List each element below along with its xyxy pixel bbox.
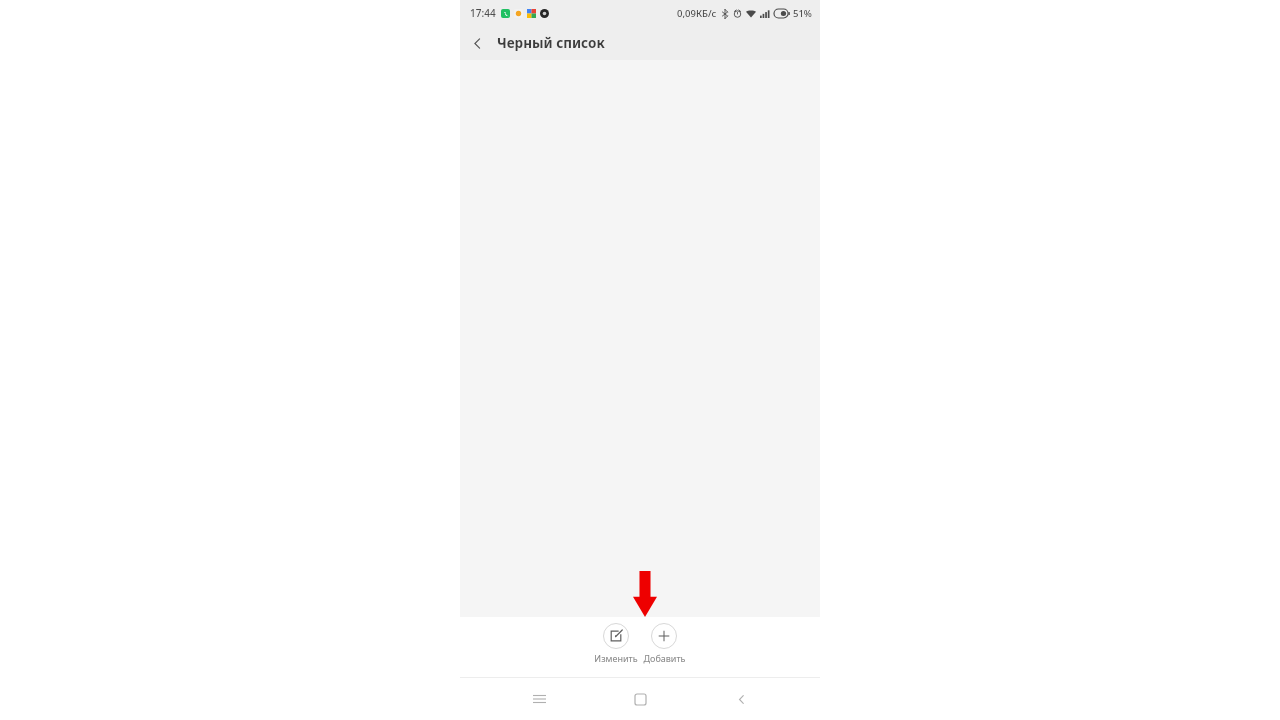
staticText: Изменить [594, 652, 638, 664]
button[interactable]: Добавить [640, 617, 688, 664]
button[interactable]: Назад [719, 678, 763, 720]
button[interactable]: Изменить [592, 617, 640, 664]
button[interactable]: Назад [460, 26, 494, 60]
staticText: 51% [793, 7, 812, 20]
button[interactable]: Главный экран [618, 678, 662, 720]
button[interactable]: Последние приложения [517, 678, 561, 720]
staticText: Черный список [497, 34, 605, 52]
staticText: 17:44 [470, 6, 496, 20]
staticText: 0,09КБ/с [677, 7, 717, 20]
staticText: Добавить [643, 652, 686, 664]
